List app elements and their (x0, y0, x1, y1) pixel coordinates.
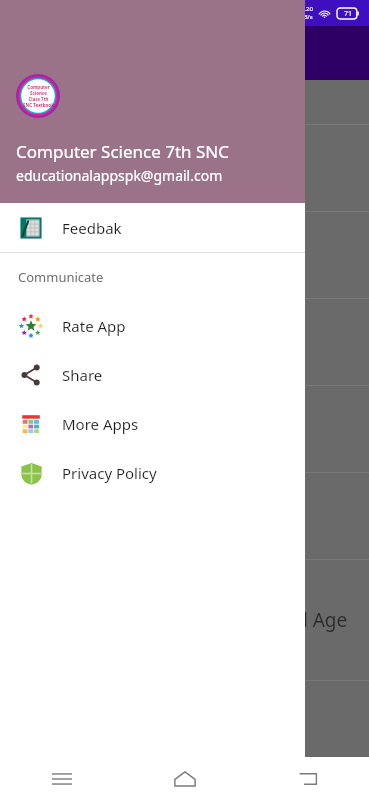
button[interactable]: Rate App (0, 301, 305, 350)
staticText: Science (30, 90, 47, 96)
staticText: Privacy Policy (62, 463, 157, 483)
button[interactable]: Feedbak (0, 203, 305, 252)
staticText: Share (62, 365, 103, 385)
staticText: Digital Age (250, 607, 348, 633)
staticText: educationalappspk@gmail.com (16, 166, 223, 185)
staticText: KB/s (300, 13, 313, 21)
button[interactable]: Privacy Policy (0, 448, 305, 497)
staticText: More Apps (62, 414, 139, 434)
button[interactable]: More Apps (0, 399, 305, 448)
staticText: 71 (344, 9, 353, 19)
staticText: Class 7th (28, 96, 49, 102)
staticText: Computer (27, 84, 50, 90)
button[interactable]: Back (284, 757, 332, 800)
button[interactable]: Home (161, 757, 209, 800)
staticText: Computer Science 7th SNC (16, 140, 229, 163)
staticText: Rate App (62, 316, 126, 336)
staticText: Communicate (18, 268, 104, 286)
button[interactable]: Share (0, 350, 305, 399)
staticText: SNC Textbook (23, 102, 54, 108)
staticText: Feedbak (62, 218, 122, 238)
button[interactable]: Recents (38, 757, 86, 800)
staticText: 2.20 (301, 5, 313, 13)
